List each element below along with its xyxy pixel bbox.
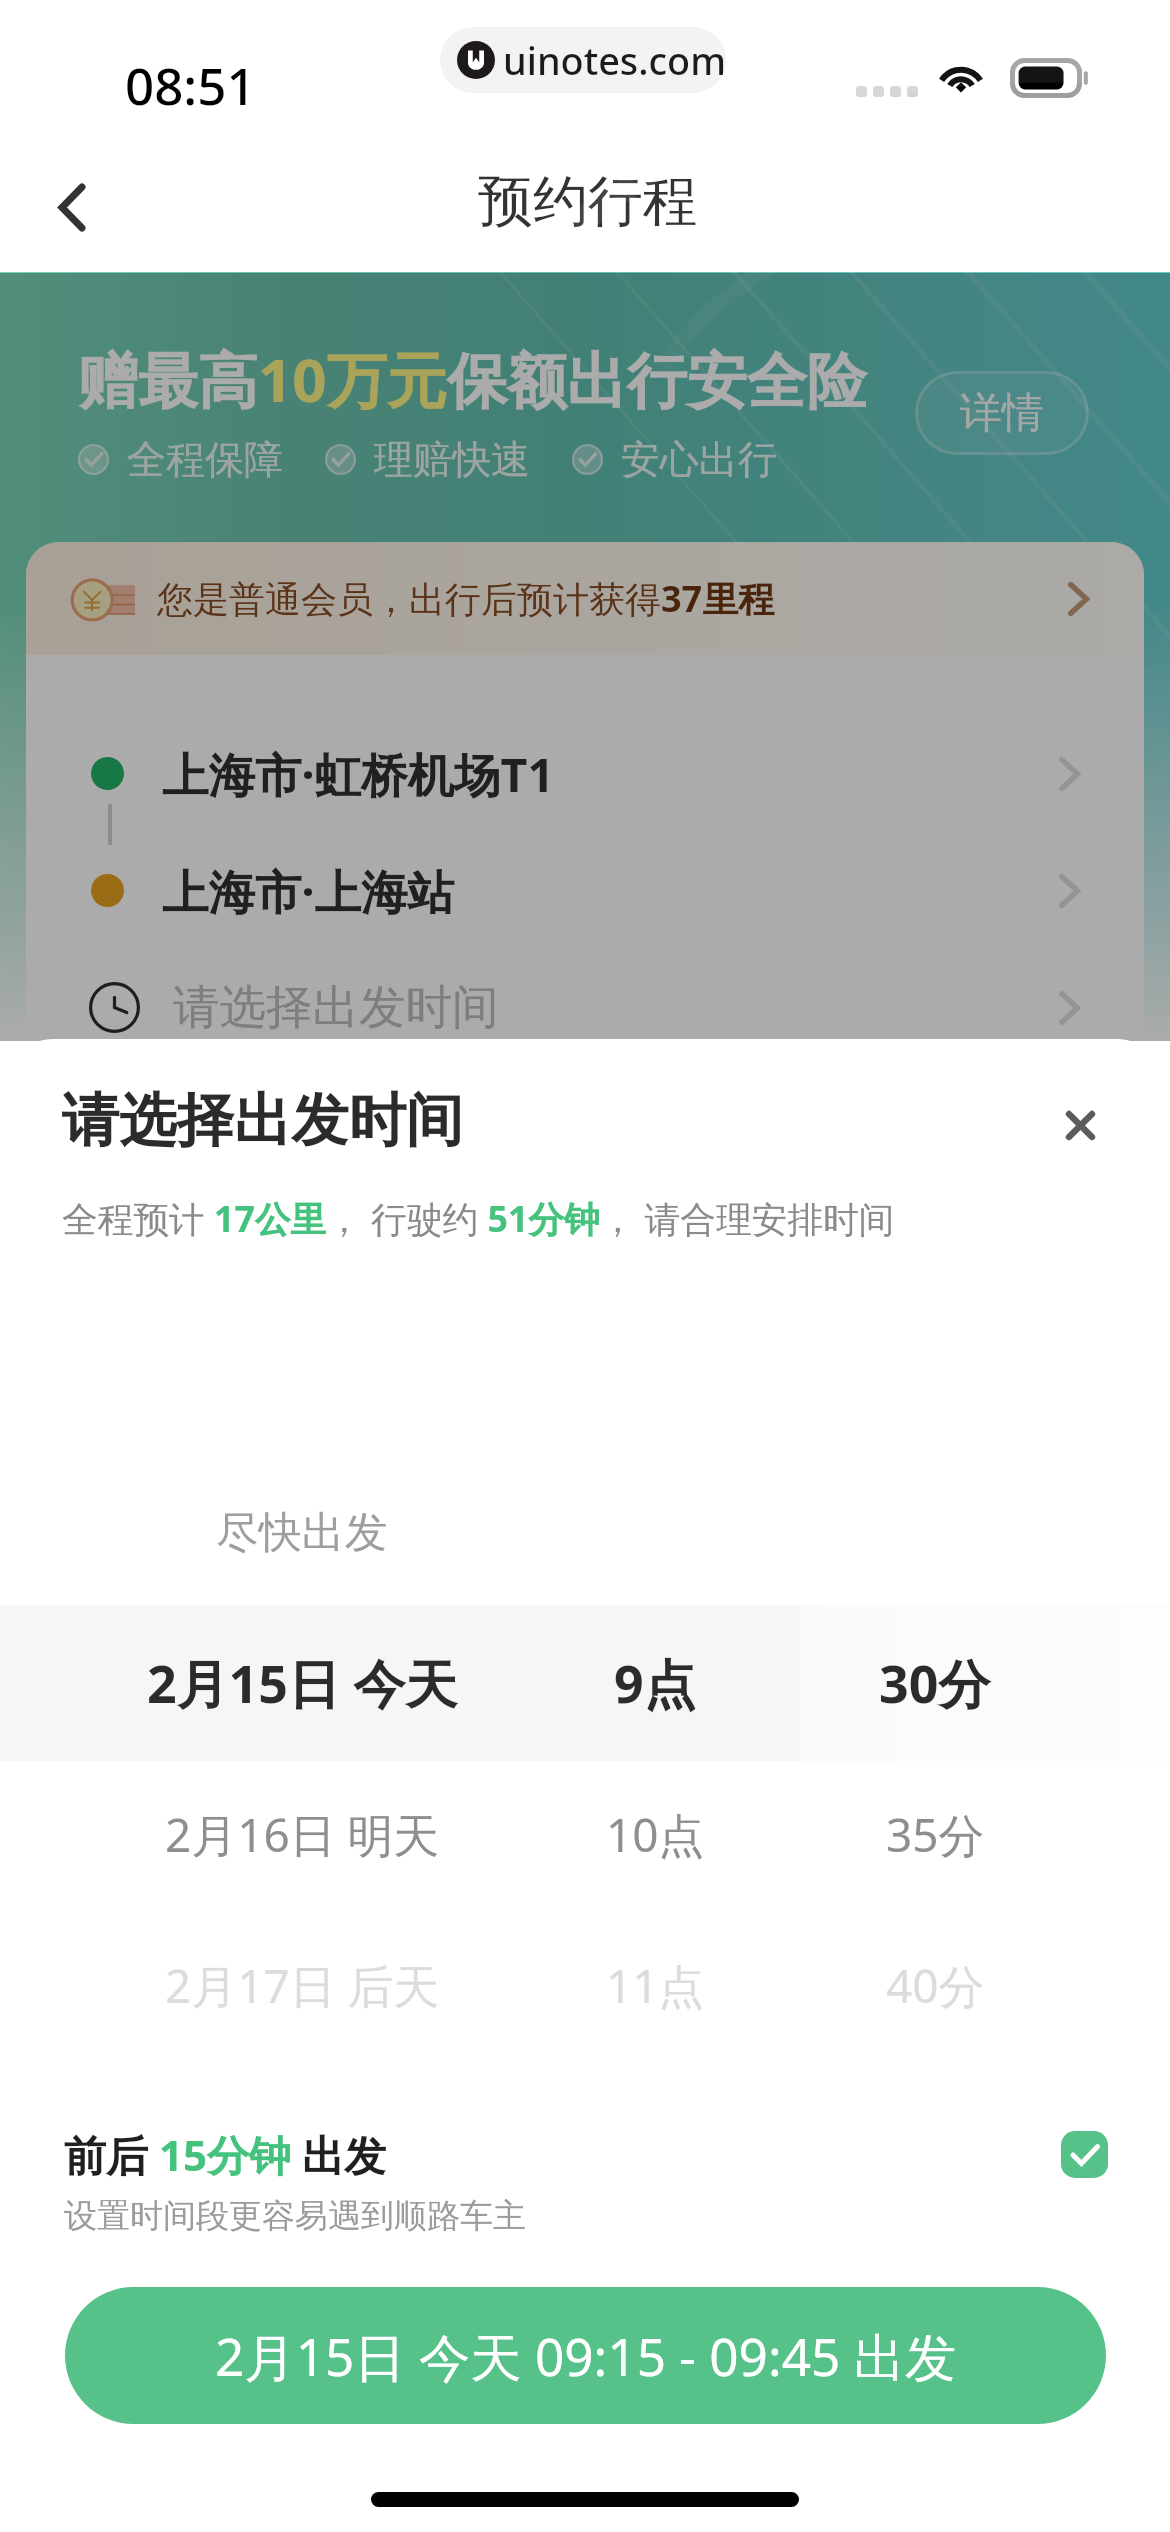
button[interactable]: 您是普通会员，出行后预计获得37里程 bbox=[73, 542, 1099, 655]
staticText: 全程预计 17公里， 行驶约 51分钟， 请合理安排时间 bbox=[62, 1194, 895, 1243]
staticText: 2月17日 后天 bbox=[165, 1954, 440, 2017]
staticText: 全程保障 bbox=[127, 435, 283, 484]
staticText: uinotes.com bbox=[503, 35, 726, 86]
staticText: 上海市·虹桥机场T1 bbox=[162, 742, 554, 806]
staticText: 2月15日 今天 bbox=[147, 1648, 458, 1719]
staticText: 详情 bbox=[960, 387, 1044, 440]
staticText: 请选择出发时间 bbox=[173, 978, 499, 1037]
staticText: 赠最高10万元保额出行安全险 bbox=[78, 338, 867, 420]
button[interactable]: 2月15日 今天 09:15 - 09:45 出发 bbox=[65, 2287, 1106, 2424]
staticText: 前后 15分钟 出发 bbox=[64, 2126, 386, 2183]
staticText: 尽快出发 bbox=[216, 1506, 388, 1560]
button[interactable]: Toggle departure window bbox=[1061, 2131, 1108, 2178]
staticText: 预约行程 bbox=[478, 167, 698, 236]
staticText: 安心出行 bbox=[621, 435, 777, 484]
staticText: 理赔快速 bbox=[374, 435, 530, 484]
staticText: 9点 bbox=[614, 1648, 696, 1719]
staticText: 设置时间段更容易遇到顺路车主 bbox=[64, 2195, 526, 2237]
staticText: 35分 bbox=[886, 1803, 985, 1866]
button[interactable]: Back bbox=[19, 155, 124, 260]
staticText: 40分 bbox=[886, 1954, 985, 2017]
button[interactable]: 请选择出发时间 bbox=[89, 949, 1090, 1066]
staticText: 2月15日 今天 09:15 - 09:45 出发 bbox=[215, 2321, 957, 2391]
staticText: 2月16日 明天 bbox=[165, 1803, 440, 1866]
button[interactable]: 上海市·上海站 bbox=[91, 832, 1090, 949]
staticText: 11点 bbox=[606, 1954, 705, 2017]
staticText: 您是普通会员，出行后预计获得37里程 bbox=[157, 574, 775, 623]
button[interactable]: 详情 bbox=[915, 371, 1089, 455]
staticText: 08:51 bbox=[125, 50, 256, 119]
staticText: 30分 bbox=[879, 1648, 991, 1719]
button[interactable]: Close bbox=[1043, 1088, 1118, 1163]
staticText: 10点 bbox=[606, 1803, 705, 1866]
staticText: 请选择出发时间 bbox=[62, 1085, 464, 1157]
button[interactable]: 上海市·虹桥机场T1 bbox=[91, 715, 1090, 832]
staticText: 上海市·上海站 bbox=[162, 859, 455, 923]
